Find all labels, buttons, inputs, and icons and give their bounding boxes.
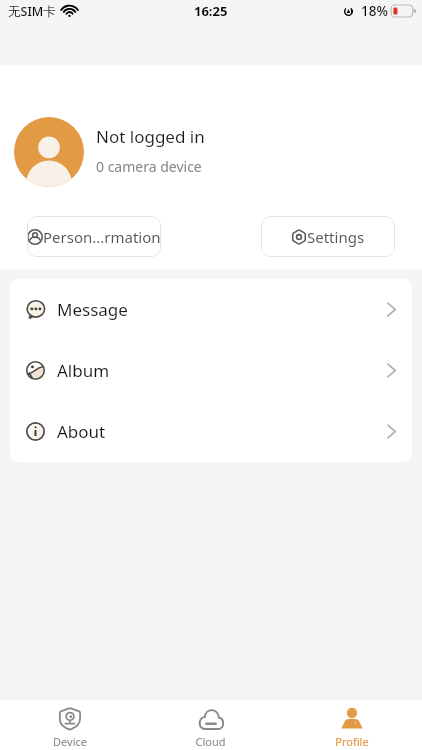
button[interactable]: Settings: [261, 216, 395, 257]
staticText: Settings: [307, 227, 365, 247]
button[interactable]: Cloud: [140, 700, 281, 750]
staticText: Person...rmation: [43, 227, 161, 247]
staticText: Cloud: [195, 734, 226, 749]
staticText: Profile: [335, 734, 369, 749]
button[interactable]: About: [10, 401, 412, 462]
button[interactable]: Album: [10, 340, 412, 401]
staticText: Not logged in: [96, 125, 205, 148]
staticText: 0 camera device: [96, 157, 202, 176]
staticText: About: [57, 420, 106, 443]
staticText: Device: [53, 734, 87, 749]
button[interactable]: Device: [0, 700, 140, 750]
staticText: Album: [57, 359, 110, 382]
button[interactable]: Message: [10, 279, 412, 340]
button[interactable]: Profile: [281, 700, 422, 750]
staticText: 18%: [361, 2, 388, 20]
button[interactable]: Person...rmation: [27, 216, 161, 257]
staticText: 16:25: [194, 2, 228, 20]
staticText: 无SIM卡: [8, 3, 56, 20]
staticText: Message: [57, 298, 128, 321]
